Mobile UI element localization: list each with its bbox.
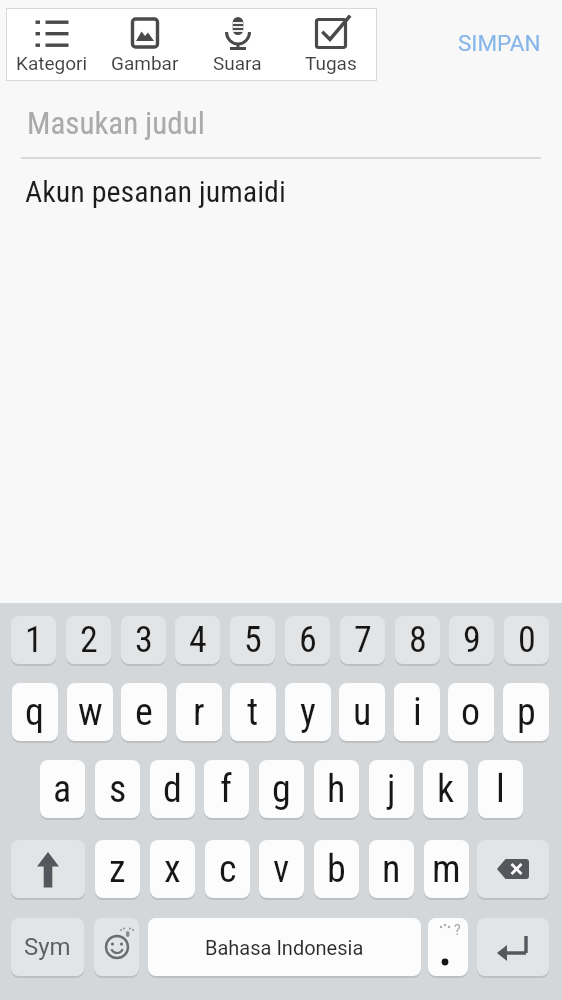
staticText: 8	[409, 619, 427, 661]
button[interactable]: v	[259, 840, 304, 898]
staticText: o	[461, 690, 481, 735]
button[interactable]: 8	[395, 616, 440, 664]
button[interactable]: t	[230, 683, 276, 741]
button[interactable]: 5	[230, 616, 275, 664]
staticText: c	[219, 847, 237, 892]
button[interactable]: u	[339, 683, 385, 741]
button[interactable]	[94, 918, 139, 976]
staticText: k	[437, 767, 455, 812]
staticText: n	[382, 847, 401, 892]
button[interactable]: ?	[428, 918, 468, 976]
button[interactable]: a	[40, 760, 85, 818]
staticText: a	[53, 767, 72, 812]
button[interactable]: z	[95, 840, 140, 898]
button[interactable]: SIMPAN	[440, 20, 558, 66]
button[interactable]: j	[369, 760, 414, 818]
button[interactable]: n	[369, 840, 414, 898]
staticText: p	[517, 690, 536, 735]
button[interactable]: 9	[449, 616, 494, 664]
staticText: 7	[354, 619, 372, 661]
button[interactable]: d	[150, 760, 195, 818]
button[interactable]: 3	[121, 616, 166, 664]
staticText: 0	[518, 619, 536, 661]
button[interactable]: 2	[66, 616, 111, 664]
button[interactable]: o	[448, 683, 494, 741]
staticText: h	[327, 767, 346, 812]
staticText: Masukan judul	[27, 105, 205, 141]
staticText: d	[163, 767, 182, 812]
staticText: 9	[463, 619, 481, 661]
staticText: x	[164, 847, 181, 892]
button[interactable]: r	[176, 683, 222, 741]
button[interactable]: 4	[175, 616, 220, 664]
staticText: u	[353, 690, 372, 735]
staticText: y	[300, 690, 316, 735]
staticText: Sym	[24, 933, 71, 961]
staticText: q	[25, 690, 45, 735]
staticText: i	[413, 690, 422, 735]
button[interactable]: 7	[340, 616, 385, 664]
staticText: b	[327, 847, 346, 892]
staticText: 1	[25, 619, 43, 661]
button[interactable]: f	[204, 760, 249, 818]
staticText: Akun pesanan jumaidi	[25, 174, 286, 209]
button[interactable]: q	[12, 683, 58, 741]
button[interactable]: x	[150, 840, 195, 898]
button[interactable]: b	[314, 840, 359, 898]
staticText: 6	[299, 619, 317, 661]
button[interactable]: Sym	[11, 918, 84, 976]
button[interactable]	[477, 918, 549, 976]
button[interactable]	[11, 840, 85, 898]
staticText: Bahasa Indonesia	[205, 936, 364, 959]
staticText: r	[193, 690, 205, 735]
button[interactable]: 0	[504, 616, 549, 664]
button[interactable]: Suara	[191, 8, 284, 81]
button[interactable]: Kategori	[6, 8, 98, 81]
staticText: 4	[189, 619, 207, 661]
staticText: 5	[244, 619, 262, 661]
button[interactable]: m	[424, 840, 469, 898]
button[interactable]: 6	[285, 616, 330, 664]
button[interactable]: h	[314, 760, 359, 818]
staticText: s	[109, 767, 127, 812]
button[interactable]: p	[503, 683, 549, 741]
button[interactable]: c	[205, 840, 250, 898]
staticText: w	[78, 690, 103, 735]
staticText: Kategori	[16, 52, 88, 74]
staticText: SIMPAN	[458, 30, 541, 56]
staticText: v	[273, 847, 290, 892]
staticText: l	[496, 767, 505, 812]
staticText: 3	[135, 619, 153, 661]
staticText: e	[135, 690, 153, 735]
button[interactable]: s	[95, 760, 140, 818]
staticText: j	[387, 767, 396, 812]
button[interactable]: l	[478, 760, 523, 818]
staticText: 2	[80, 619, 98, 661]
button[interactable]: i	[394, 683, 440, 741]
staticText: ?	[454, 922, 461, 938]
button[interactable]	[477, 840, 549, 898]
button[interactable]: Tugas	[284, 8, 377, 81]
button[interactable]: y	[285, 683, 331, 741]
button[interactable]: g	[259, 760, 304, 818]
button[interactable]: k	[423, 760, 468, 818]
staticText: g	[272, 767, 291, 812]
button[interactable]: 1	[11, 616, 56, 664]
button[interactable]: Bahasa Indonesia	[148, 918, 421, 976]
staticText: Suara	[213, 52, 262, 74]
button[interactable]: w	[67, 683, 113, 741]
staticText: f	[220, 767, 233, 812]
button[interactable]: e	[121, 683, 167, 741]
staticText: Gambar	[111, 52, 179, 74]
staticText: t	[247, 690, 259, 735]
staticText: m	[432, 847, 461, 892]
button[interactable]: Gambar	[98, 8, 191, 81]
staticText: z	[109, 847, 126, 892]
staticText: Tugas	[305, 52, 357, 74]
